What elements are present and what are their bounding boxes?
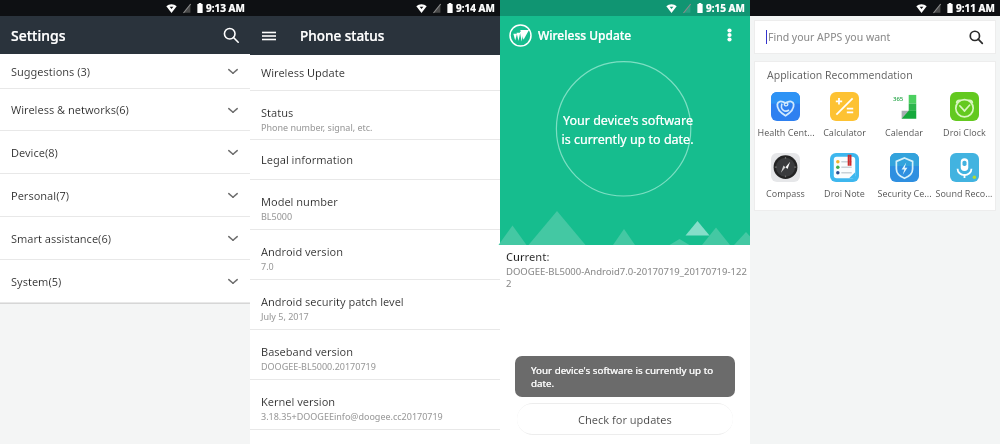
button[interactable]: Kernel version bbox=[250, 380, 500, 429]
staticText: 365 bbox=[893, 95, 904, 103]
staticText: Kernel version bbox=[261, 394, 336, 409]
staticText: Android version bbox=[261, 244, 343, 259]
button[interactable]: Menu bbox=[256, 23, 282, 49]
button[interactable]: Android security patch level bbox=[250, 280, 500, 329]
staticText: is currently up to date. bbox=[561, 131, 694, 148]
staticText: Baseband version bbox=[261, 344, 354, 359]
button[interactable]: Droi Note bbox=[815, 153, 874, 199]
staticText: Calculator bbox=[823, 126, 866, 138]
button[interactable]: Legal information bbox=[250, 140, 500, 179]
staticText: Legal information bbox=[261, 152, 353, 167]
staticText: Smart assistance(6) bbox=[11, 231, 112, 246]
button[interactable]: Search bbox=[968, 29, 984, 45]
staticText: Find your APPS you want bbox=[768, 30, 891, 44]
button[interactable]: Personal(7) bbox=[0, 174, 250, 216]
staticText: DOOGEE-BL5000.20170719 bbox=[261, 360, 376, 372]
button[interactable]: Check for updates bbox=[517, 404, 733, 434]
staticText: Your device's software is currently up t… bbox=[531, 364, 714, 390]
staticText: Wireless Update bbox=[261, 65, 345, 80]
staticText: Status bbox=[261, 105, 294, 120]
staticText: 9:11 AM bbox=[956, 1, 995, 15]
staticText: 9:13 AM bbox=[206, 1, 245, 15]
staticText: Application Recommendation bbox=[767, 68, 913, 82]
button[interactable]: Android version bbox=[250, 230, 500, 279]
button[interactable]: Baseband version bbox=[250, 330, 500, 379]
staticText: Android security patch level bbox=[261, 294, 404, 309]
button[interactable]: Security Ce... bbox=[874, 153, 934, 199]
staticText: Droi Clock bbox=[943, 126, 986, 138]
button[interactable]: Sound Reco... bbox=[934, 153, 994, 199]
staticText: System(5) bbox=[11, 274, 62, 289]
staticText: Security Ce... bbox=[877, 187, 932, 199]
button[interactable]: Calculator bbox=[815, 92, 874, 138]
button[interactable]: Compass bbox=[756, 153, 815, 199]
staticText: July 5, 2017 bbox=[261, 310, 309, 322]
button[interactable]: Droi Clock bbox=[934, 92, 994, 138]
staticText: 9:15 AM bbox=[706, 1, 745, 15]
button[interactable]: More options bbox=[722, 28, 736, 42]
staticText: Check for updates bbox=[578, 412, 672, 427]
staticText: 7.0 bbox=[261, 260, 274, 272]
staticText: Current: bbox=[506, 249, 550, 264]
staticText: DOOGEE-BL5000-Android7.0-20170719_201707… bbox=[506, 265, 747, 290]
button[interactable]: Find your APPS you want bbox=[754, 20, 996, 54]
button[interactable]: Wireless & networks(6) bbox=[0, 89, 250, 130]
button[interactable]: Status bbox=[250, 91, 500, 139]
button[interactable]: Suggestions (3) bbox=[0, 54, 250, 88]
staticText: Sound Reco... bbox=[935, 187, 993, 199]
button[interactable]: System(5) bbox=[0, 260, 250, 302]
staticText: Wireless & networks(6) bbox=[11, 102, 129, 117]
button[interactable]: Wireless Update bbox=[250, 55, 500, 90]
staticText: Suggestions (3) bbox=[11, 64, 91, 79]
staticText: Personal(7) bbox=[11, 188, 70, 203]
staticText: Phone status bbox=[300, 27, 385, 45]
staticText: Phone number, signal, etc. bbox=[261, 121, 373, 133]
staticText: Your device's software bbox=[563, 112, 693, 129]
button[interactable]: Smart assistance(6) bbox=[0, 217, 250, 259]
button[interactable]: Search bbox=[212, 16, 250, 54]
staticText: Device(8) bbox=[11, 145, 58, 160]
staticText: 9:14 AM bbox=[456, 1, 495, 15]
button[interactable]: Model number bbox=[250, 180, 500, 229]
button[interactable]: Health Cent... bbox=[756, 92, 815, 138]
staticText: Settings bbox=[11, 26, 66, 45]
staticText: Droi Note bbox=[824, 187, 865, 199]
staticText: 3.18.35+DOOGEEinfo@doogee.cc20170719 bbox=[261, 410, 443, 422]
staticText: Calendar bbox=[885, 126, 923, 138]
button[interactable]: Device(8) bbox=[0, 131, 250, 173]
staticText: BL5000 bbox=[261, 210, 293, 222]
staticText: Model number bbox=[261, 194, 338, 209]
staticText: Wireless Update bbox=[538, 27, 632, 43]
staticText: Health Cent... bbox=[757, 126, 815, 138]
staticText: Compass bbox=[766, 187, 805, 199]
button[interactable]: 365 bbox=[874, 92, 934, 138]
